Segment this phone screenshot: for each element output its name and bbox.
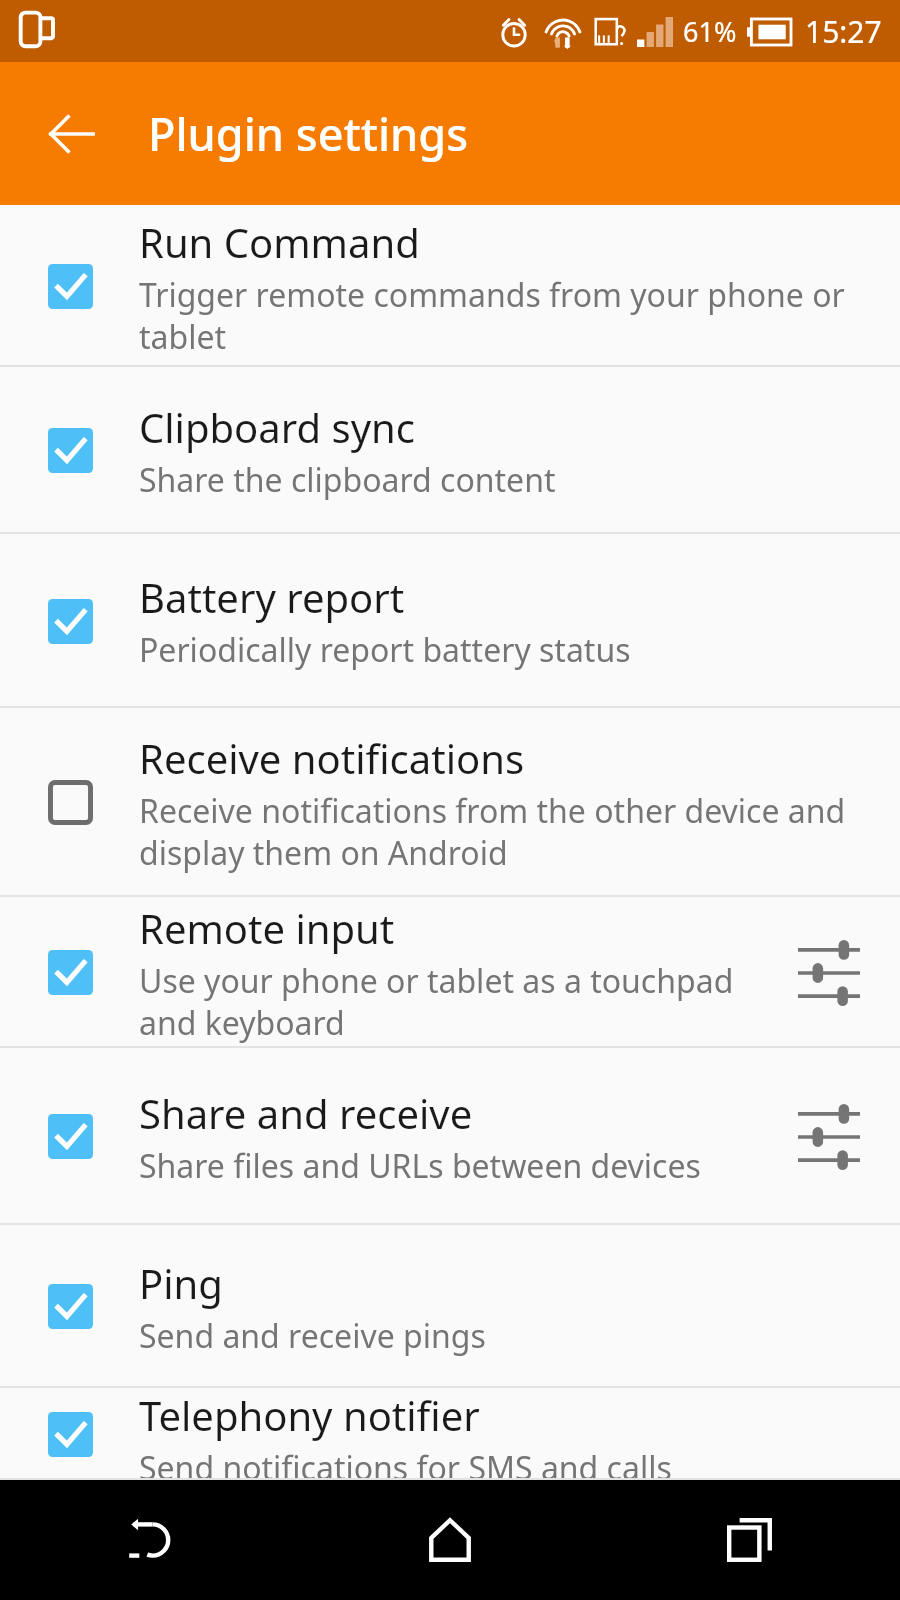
staticText: 15:27 [805, 11, 882, 52]
button[interactable]: Share and receive [0, 1048, 900, 1225]
button[interactable]: Plugin settings for Share and receive [786, 1094, 872, 1180]
staticText: Plugin settings [148, 103, 469, 164]
button[interactable]: Ping [0, 1225, 900, 1388]
button[interactable]: Recent apps [600, 1480, 900, 1600]
staticText: Receive notifications [139, 731, 525, 785]
staticText: Receive notifications from the other dev… [139, 789, 872, 874]
staticText: Send and receive pings [139, 1314, 486, 1358]
staticText: Telephony notifier [139, 1388, 480, 1442]
staticText: Ping [139, 1256, 223, 1310]
staticText: Send notifications for SMS and calls [139, 1446, 672, 1480]
button[interactable]: Home [300, 1480, 600, 1600]
button[interactable]: Battery report [0, 534, 900, 708]
staticText: Clipboard sync [139, 400, 415, 454]
staticText: Share and receive [139, 1086, 473, 1140]
button[interactable]: Receive notifications [0, 708, 900, 897]
button[interactable]: Back [26, 88, 118, 180]
button[interactable]: Clipboard sync [0, 367, 900, 534]
staticText: 61% [683, 13, 737, 50]
staticText: Trigger remote commands from your phone … [139, 273, 872, 358]
button[interactable]: Plugin settings for Remote input [786, 930, 872, 1016]
staticText: Remote input [139, 901, 395, 955]
staticText: Share files and URLs between devices [139, 1144, 701, 1188]
staticText: Share the clipboard content [139, 458, 556, 502]
staticText: Run Command [139, 215, 420, 269]
button[interactable]: Telephony notifier [0, 1388, 900, 1480]
button[interactable]: Remote input [0, 897, 900, 1048]
staticText: Battery report [139, 570, 405, 624]
staticText: Use your phone or tablet as a touchpad a… [139, 959, 770, 1044]
button[interactable]: Back [0, 1480, 300, 1600]
staticText: Periodically report battery status [139, 628, 631, 672]
button[interactable]: Run Command [0, 205, 900, 367]
